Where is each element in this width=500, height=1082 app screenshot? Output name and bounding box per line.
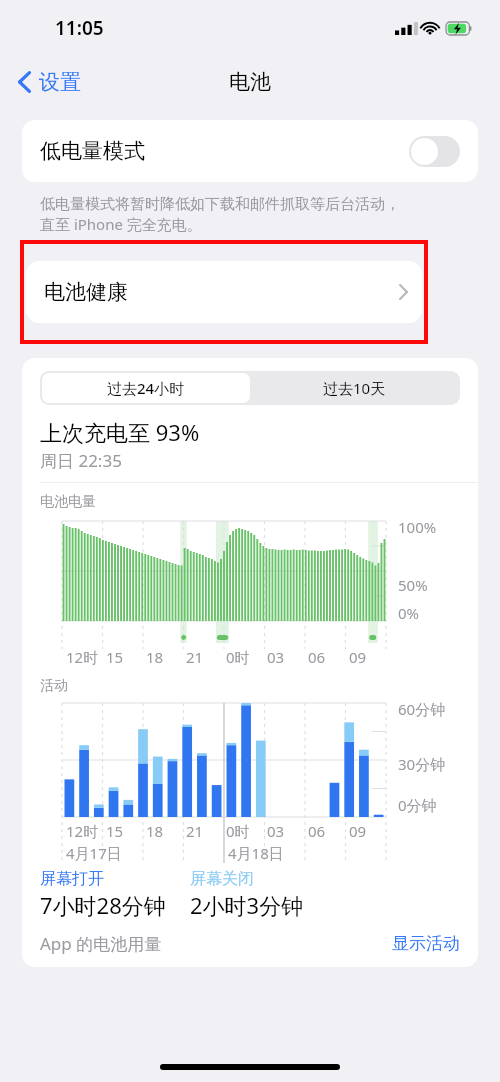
staticText: 09 (349, 647, 367, 667)
staticText: 03 (267, 647, 285, 667)
staticText: 电池 (229, 69, 271, 95)
staticText: 21 (186, 821, 204, 841)
button[interactable]: 电池健康 (26, 261, 422, 323)
staticText: 2小时3分钟 (190, 890, 304, 920)
staticText: 设置 (39, 69, 81, 95)
button[interactable]: 过去10天 (250, 373, 458, 403)
staticText: 100% (398, 517, 437, 537)
staticText: 03 (267, 821, 285, 841)
staticText: 06 (308, 821, 326, 841)
staticText: 21 (186, 647, 204, 667)
button[interactable]: 设置 (12, 65, 87, 99)
staticText: 低电量模式将暂时降低如下载和邮件抓取等后台活动， (40, 195, 400, 214)
staticText: 低电量模式 (40, 138, 145, 164)
staticText: 电池健康 (44, 279, 128, 305)
staticText: 0分钟 (398, 795, 437, 815)
staticText: 11:05 (55, 15, 104, 41)
staticText: 显示活动 (392, 933, 460, 954)
staticText: 4月17日 (66, 843, 122, 863)
staticText: 活动 (40, 677, 68, 695)
staticText: App 的电池用量 (40, 932, 162, 955)
staticText: 12时 (66, 647, 99, 667)
staticText: 0时 (226, 647, 250, 667)
staticText: 09 (349, 821, 367, 841)
staticText: 30分钟 (398, 754, 446, 774)
staticText: 过去24小时 (107, 378, 185, 398)
staticText: 60分钟 (398, 699, 446, 719)
staticText: 4月18日 (228, 843, 284, 863)
staticText: 50% (398, 575, 428, 595)
button[interactable]: 过去24小时 (42, 373, 250, 403)
staticText: 15 (106, 821, 124, 841)
staticText: 0% (398, 603, 420, 623)
staticText: 0时 (226, 821, 250, 841)
staticText: 过去10天 (323, 378, 386, 398)
staticText: 屏幕打开 (40, 869, 104, 889)
staticText: 7小时28分钟 (40, 890, 166, 920)
staticText: 06 (308, 647, 326, 667)
staticText: 直至 iPhone 完全充电。 (40, 214, 202, 234)
staticText: 上次充电至 93% (40, 417, 200, 447)
staticText: 周日 22:35 (40, 449, 122, 472)
staticText: 18 (146, 647, 164, 667)
button[interactable]: 低电量模式 (22, 120, 478, 182)
other: 更多 (399, 284, 408, 300)
staticText: 电池电量 (40, 493, 96, 511)
staticText: 18 (146, 821, 164, 841)
staticText: 12时 (66, 821, 99, 841)
staticText: 屏幕关闭 (190, 869, 254, 889)
button[interactable]: 显示活动 (392, 933, 460, 954)
staticText: 15 (106, 647, 124, 667)
